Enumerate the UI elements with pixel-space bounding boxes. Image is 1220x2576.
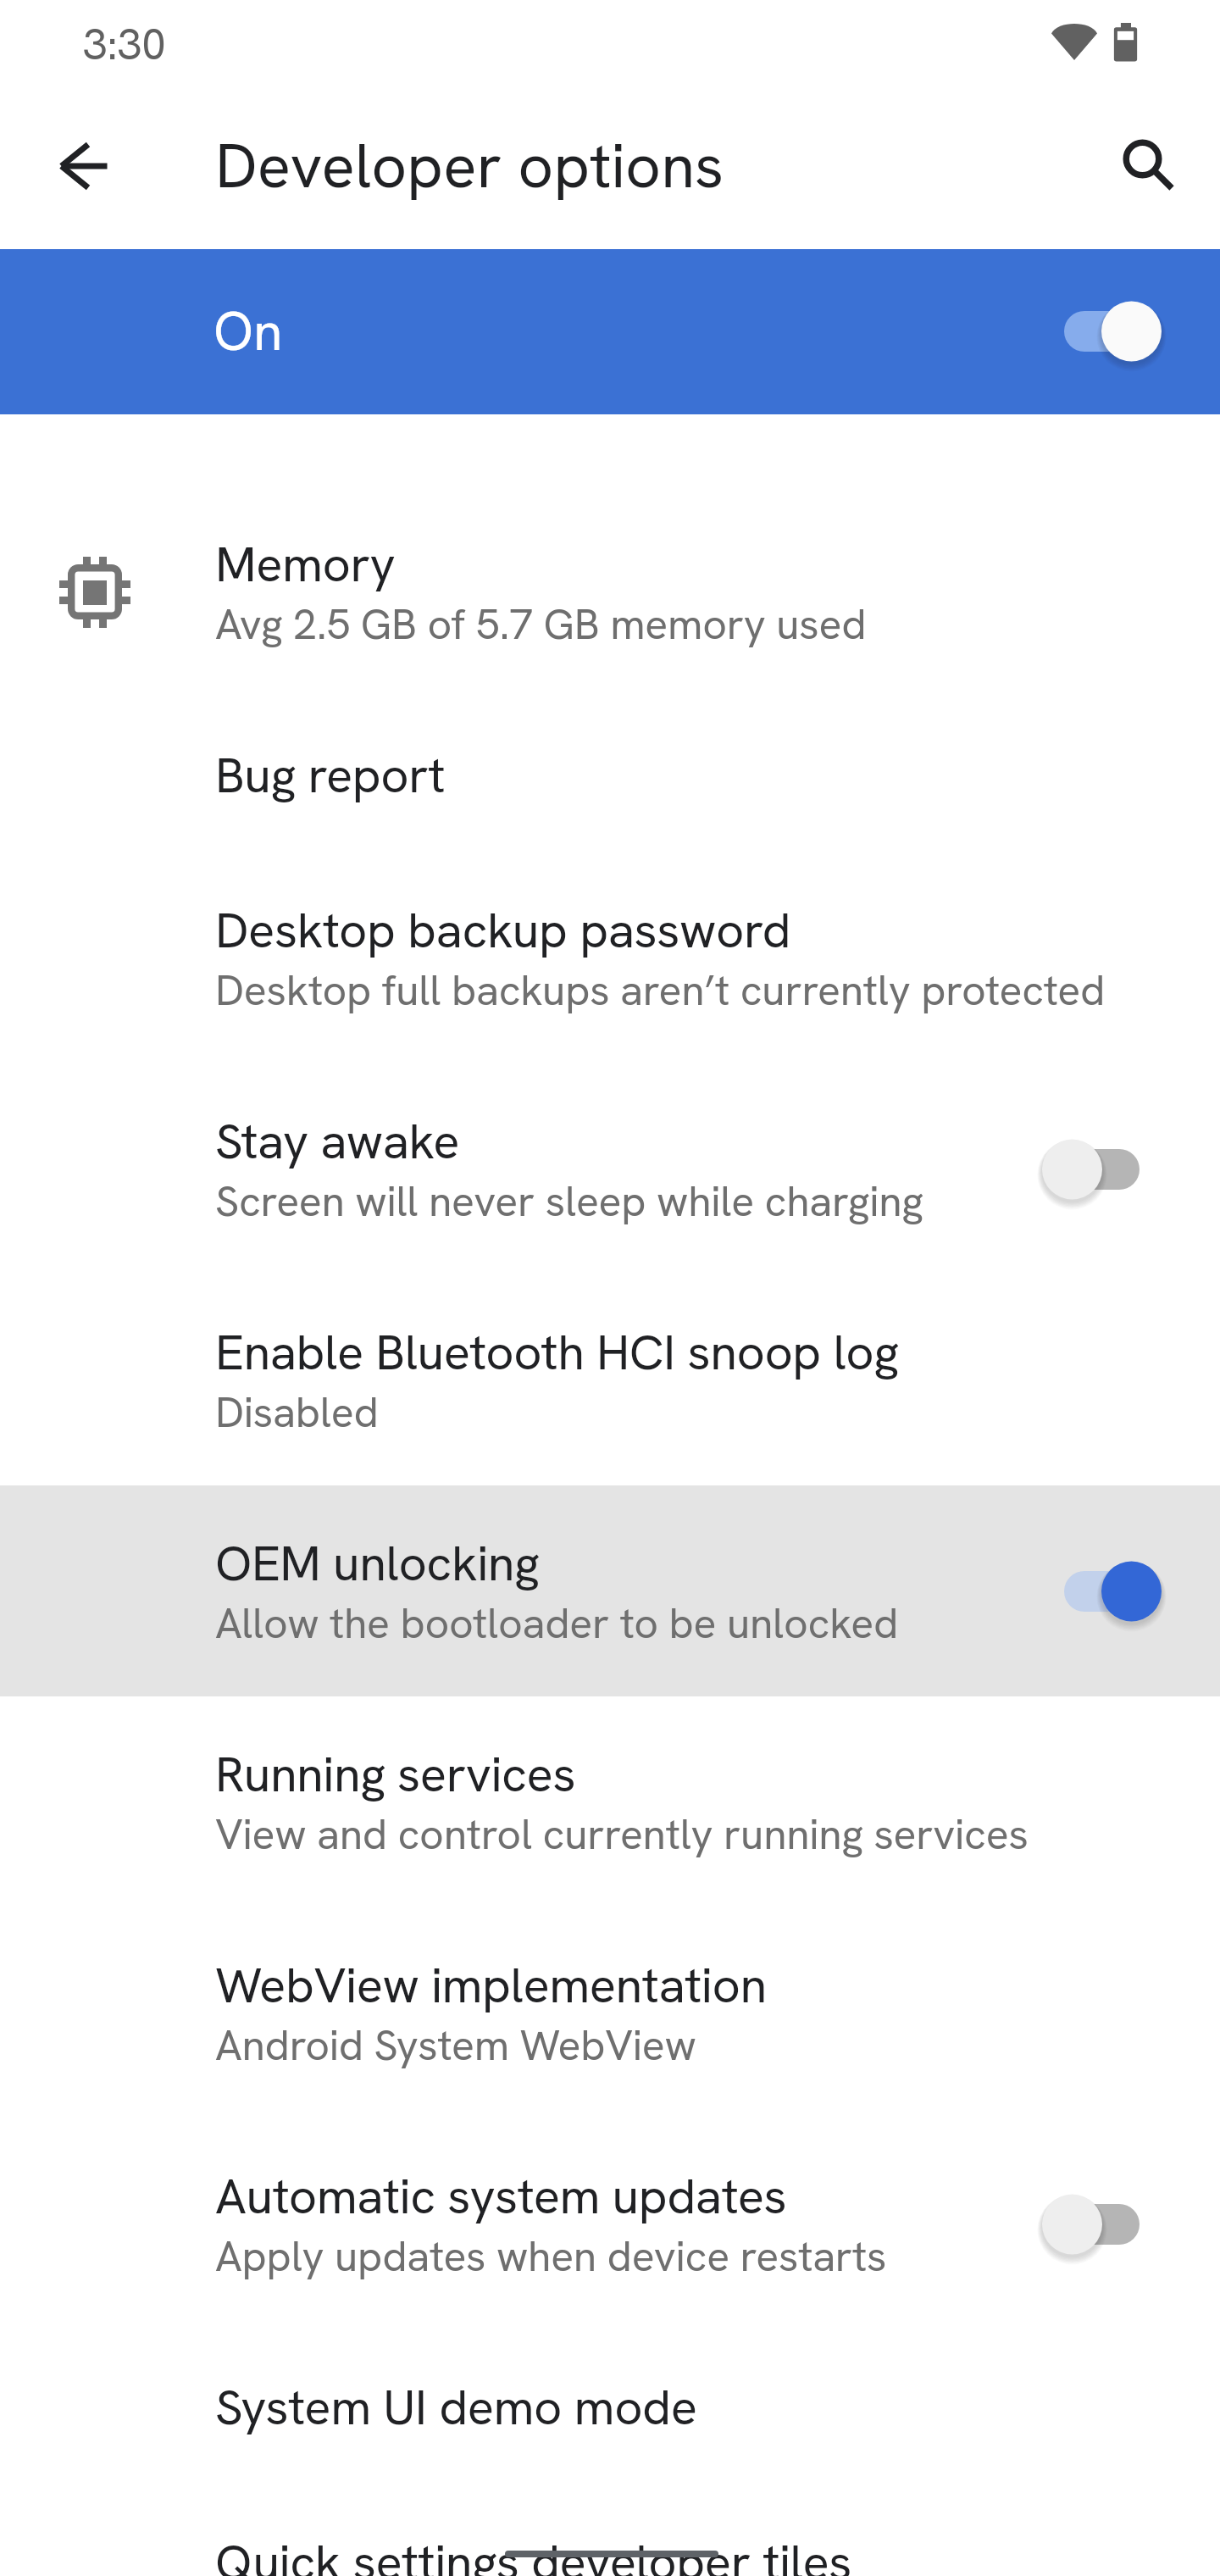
button[interactable]: Toggle Automatic system updates — [1042, 2190, 1162, 2258]
button[interactable]: Running services — [0, 1696, 1220, 1907]
staticText: System UI demo mode — [215, 2375, 697, 2440]
staticText: WebView implementation — [215, 1953, 767, 2018]
staticText: Screen will never sleep while charging — [215, 1174, 923, 1229]
button[interactable]: Search — [1090, 106, 1195, 211]
staticText: Memory — [215, 532, 396, 597]
button[interactable]: Stay awake — [0, 1063, 1220, 1274]
button[interactable]: OEM unlocking — [0, 1485, 1220, 1696]
staticText: Running services — [215, 1742, 576, 1807]
button[interactable]: Toggle developer options — [1042, 297, 1162, 365]
staticText: Allow the bootloader to be unlocked — [215, 1596, 898, 1651]
staticText: Enable Bluetooth HCI snoop log — [215, 1320, 899, 1385]
button[interactable]: WebView implementation — [0, 1907, 1220, 2118]
button[interactable]: Toggle OEM unlocking — [1042, 1557, 1162, 1625]
button[interactable]: Desktop backup password — [0, 852, 1220, 1063]
staticText: On — [213, 297, 283, 366]
button[interactable]: Memory — [0, 486, 1220, 697]
button[interactable]: Quick settings developer tiles — [0, 2484, 1220, 2576]
button[interactable]: System UI demo mode — [0, 2329, 1220, 2484]
staticText: 3:30 — [83, 16, 166, 72]
button[interactable]: Back — [25, 107, 141, 224]
staticText: Quick settings developer tiles — [215, 2530, 852, 2576]
button[interactable]: Automatic system updates — [0, 2118, 1220, 2329]
staticText: Desktop backup password — [215, 898, 790, 963]
staticText: Bug report — [215, 743, 445, 808]
staticText: View and control currently running servi… — [215, 1807, 1029, 1862]
staticText: Desktop full backups aren’t currently pr… — [215, 963, 1105, 1018]
button[interactable]: Bug report — [0, 697, 1220, 852]
staticText: OEM unlocking — [215, 1531, 540, 1596]
button[interactable]: On — [0, 249, 1220, 414]
staticText: Apply updates when device restarts — [215, 2229, 887, 2284]
staticText: Stay awake — [215, 1109, 460, 1174]
staticText: Android System WebView — [215, 2018, 696, 2073]
button[interactable]: Toggle Stay awake — [1042, 1135, 1162, 1203]
staticText: Avg 2.5 GB of 5.7 GB memory used — [215, 597, 867, 652]
staticText: Automatic system updates — [215, 2164, 787, 2229]
staticText: Developer options — [215, 125, 724, 206]
button[interactable]: Enable Bluetooth HCI snoop log — [0, 1274, 1220, 1485]
staticText: Disabled — [215, 1385, 379, 1440]
